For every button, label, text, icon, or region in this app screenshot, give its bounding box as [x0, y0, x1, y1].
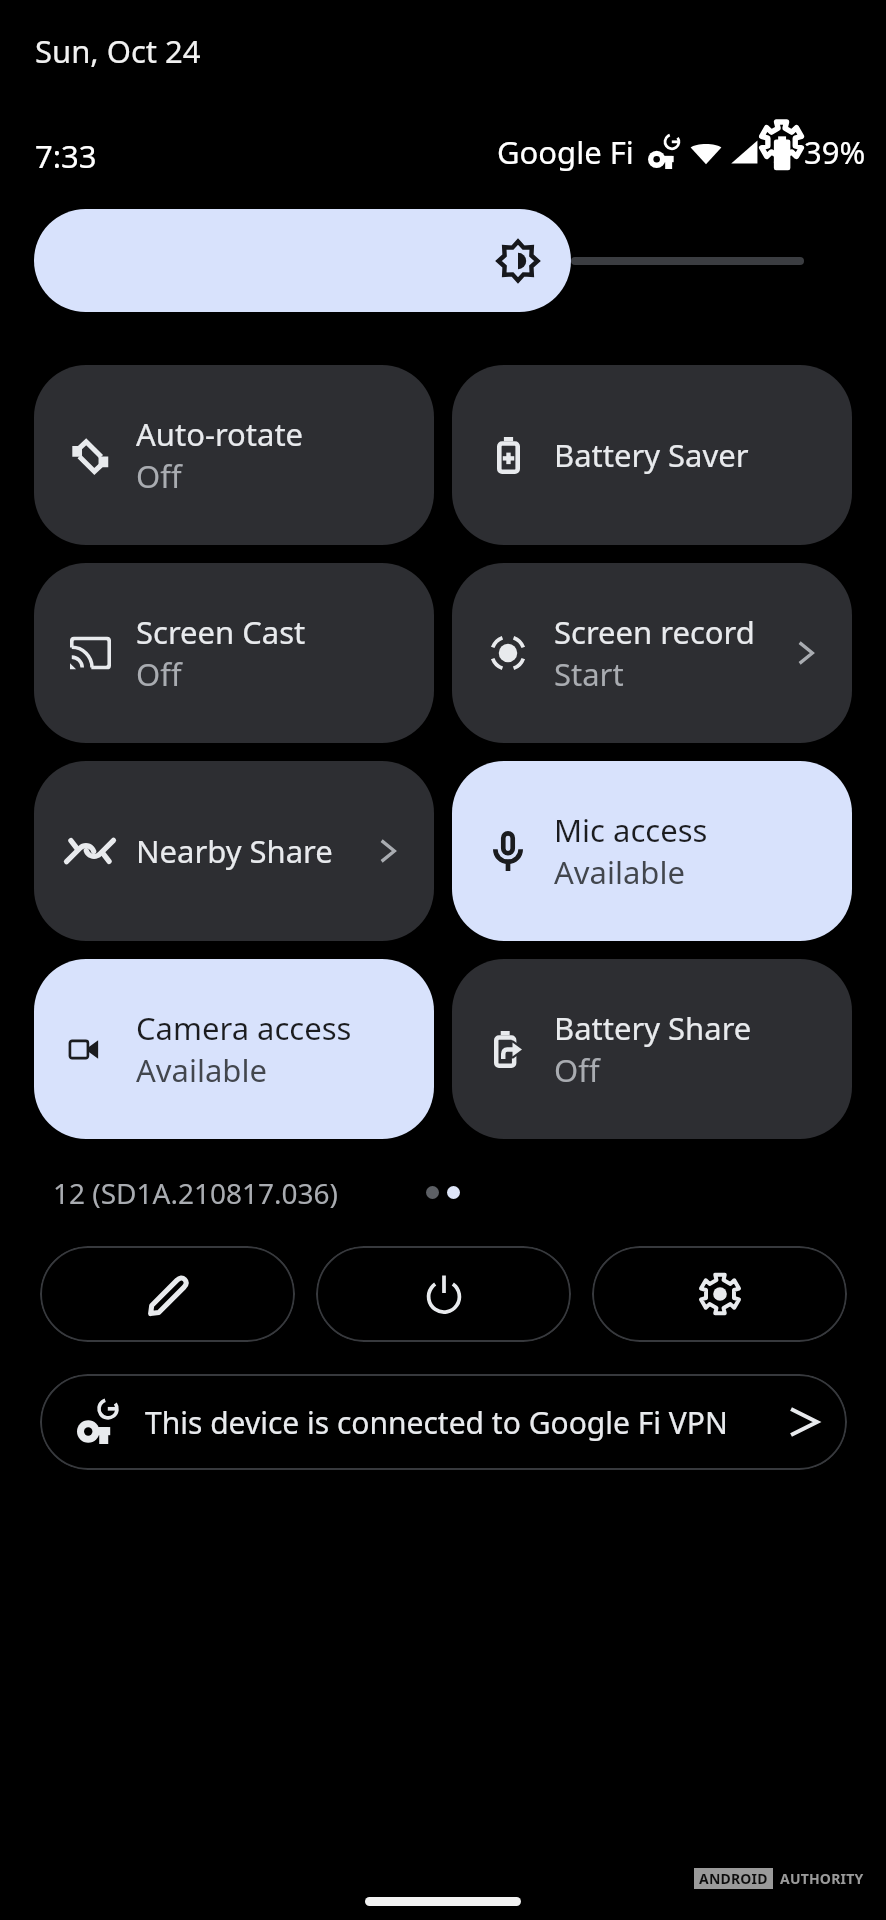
staticText: Battery Share [554, 1007, 752, 1049]
button[interactable]: Brightness [34, 209, 571, 312]
button[interactable]: Mic access [452, 761, 852, 941]
staticText: Off [554, 1049, 600, 1091]
staticText: Off [136, 455, 182, 497]
staticText: Camera access [136, 1007, 352, 1049]
button[interactable]: Settings [592, 1246, 847, 1342]
button[interactable]: Camera access [34, 959, 434, 1139]
staticText: Start [554, 653, 624, 695]
button[interactable]: Edit [40, 1246, 295, 1342]
button[interactable]: This device is connected to Google Fi VP… [40, 1374, 847, 1470]
button[interactable]: Auto-rotate [34, 365, 434, 545]
button[interactable]: Screen record [452, 563, 852, 743]
staticText: Mic access [554, 809, 708, 851]
staticText: Google Fi [497, 131, 634, 173]
staticText: Screen Cast [136, 611, 306, 653]
staticText: Off [136, 653, 182, 695]
staticText: 7:33 [35, 135, 97, 177]
button[interactable]: Power [316, 1246, 571, 1342]
button[interactable]: Nearby Share [34, 761, 434, 941]
staticText: Sun, Oct 24 [35, 30, 201, 72]
button[interactable]: Battery Share [452, 959, 852, 1139]
staticText: Screen record [554, 611, 755, 653]
staticText: Auto-rotate [136, 413, 304, 455]
staticText: AUTHORITY [780, 1869, 864, 1888]
staticText: 39% [804, 131, 866, 173]
staticText: Available [136, 1049, 267, 1091]
staticText: This device is connected to Google Fi VP… [145, 1402, 728, 1443]
staticText: Available [554, 851, 685, 893]
button[interactable]: Battery Saver [452, 365, 852, 545]
staticText: 12 (SD1A.210817.036) [53, 1174, 338, 1212]
button[interactable]: Screen Cast [34, 563, 434, 743]
staticText: Nearby Share [136, 830, 333, 872]
staticText: Battery Saver [554, 434, 749, 476]
staticText: ANDROID [699, 1869, 768, 1888]
